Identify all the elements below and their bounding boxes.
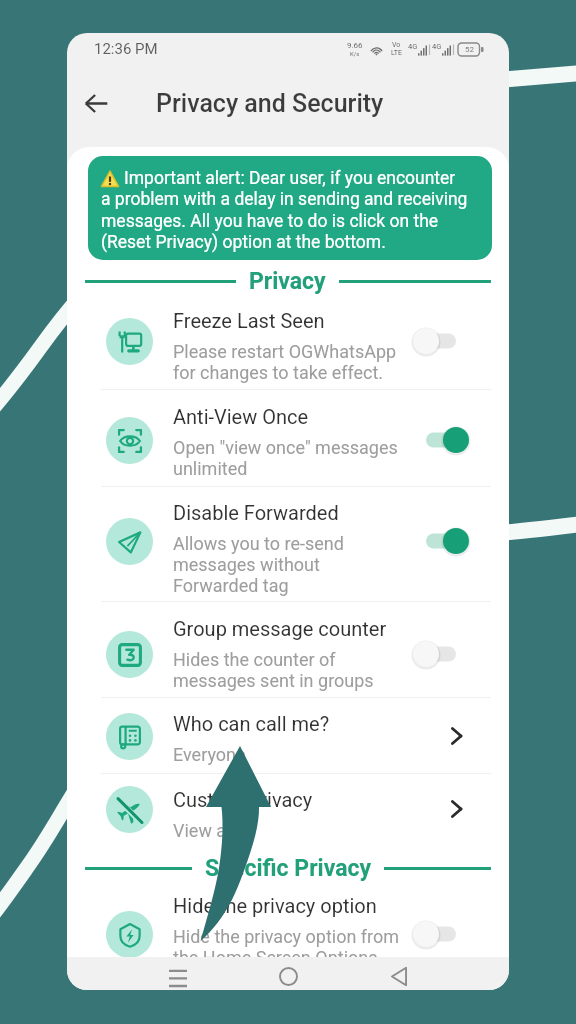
button[interactable]: Toggle off [415, 327, 467, 355]
staticText: 4G [432, 42, 442, 51]
button[interactable]: Group message counter [67, 606, 509, 686]
staticText: 12:36 PM [94, 40, 158, 58]
staticText: Please restart OGWhatsApp for changes to… [173, 341, 397, 383]
button[interactable]: Anti-View Once [67, 394, 509, 474]
staticText: Privacy [249, 268, 326, 295]
staticText: 52 [465, 45, 474, 54]
button[interactable]: Toggle off [415, 640, 467, 668]
button[interactable]: Back [376, 963, 421, 990]
staticText: Privacy and Security [156, 89, 384, 118]
button[interactable]: Recents [155, 963, 200, 990]
staticText: a problem with a delay in sending and re… [101, 189, 468, 252]
staticText: Hide the privacy option from the Home Sc… [173, 926, 400, 958]
button[interactable]: Toggle on [415, 527, 467, 555]
button[interactable]: Toggle on [415, 426, 467, 454]
staticText: Group message counter [173, 617, 387, 640]
staticText: Hides the counter of messages sent in gr… [173, 649, 374, 691]
staticText: Allows you to re-send messages without F… [173, 533, 344, 596]
button[interactable]: Home [265, 963, 311, 990]
staticText: LTE [391, 49, 402, 57]
staticText: Anti-View Once [173, 405, 309, 428]
staticText: 9.66 [347, 41, 363, 50]
staticText: K/s [350, 50, 360, 57]
staticText: Vo [392, 41, 401, 49]
staticText: Freeze Last Seen [173, 309, 325, 332]
staticText: Disable Forwarded [173, 501, 339, 524]
staticText: Specific Privacy [205, 855, 371, 882]
staticText: Custom Privacy [173, 788, 313, 811]
button[interactable]: Freeze Last Seen [67, 298, 509, 378]
staticText: Hide the privacy option [173, 894, 377, 917]
button[interactable]: Open [439, 719, 473, 753]
button[interactable]: Disable Forwarded [67, 490, 509, 591]
staticText: Open "view once" messages unlimited [173, 437, 398, 479]
button[interactable]: Open [439, 792, 473, 826]
staticText: 4G [408, 42, 418, 51]
button[interactable]: Custom Privacy [67, 777, 509, 836]
staticText: Who can call me? [173, 712, 330, 735]
button[interactable]: Hide the privacy option [67, 883, 509, 958]
button[interactable]: Who can call me? [67, 701, 509, 760]
button[interactable]: Back [73, 80, 119, 126]
button[interactable]: Toggle off [415, 920, 467, 948]
staticText: Everyone [173, 744, 246, 765]
staticText: Important alert: Dear user, if you encou… [124, 168, 456, 189]
staticText: View all [173, 820, 235, 841]
